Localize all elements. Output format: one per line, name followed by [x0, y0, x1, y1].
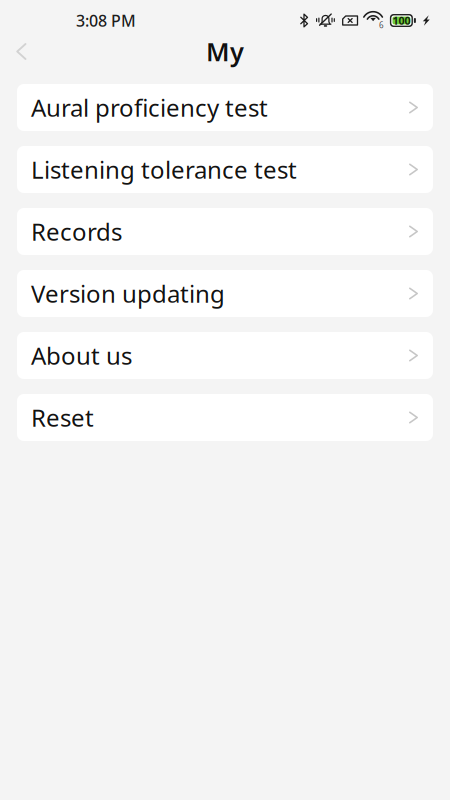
button[interactable]: Reset: [17, 394, 433, 441]
button[interactable]: Back: [0, 37, 41, 66]
button[interactable]: Version updating: [17, 270, 433, 317]
staticText: 3:08 PM: [76, 10, 136, 31]
button[interactable]: Aural proficiency test: [17, 84, 433, 131]
button[interactable]: Listening tolerance test: [17, 146, 433, 193]
staticText: Version updating: [31, 278, 225, 309]
staticText: My: [206, 35, 244, 68]
staticText: Records: [31, 216, 122, 247]
staticText: Aural proficiency test: [31, 92, 268, 123]
staticText: About us: [31, 340, 132, 371]
button[interactable]: About us: [17, 332, 433, 379]
staticText: 100: [392, 13, 410, 28]
staticText: Listening tolerance test: [31, 154, 297, 185]
staticText: 6: [379, 20, 384, 30]
button[interactable]: Records: [17, 208, 433, 255]
staticText: Reset: [31, 402, 94, 433]
